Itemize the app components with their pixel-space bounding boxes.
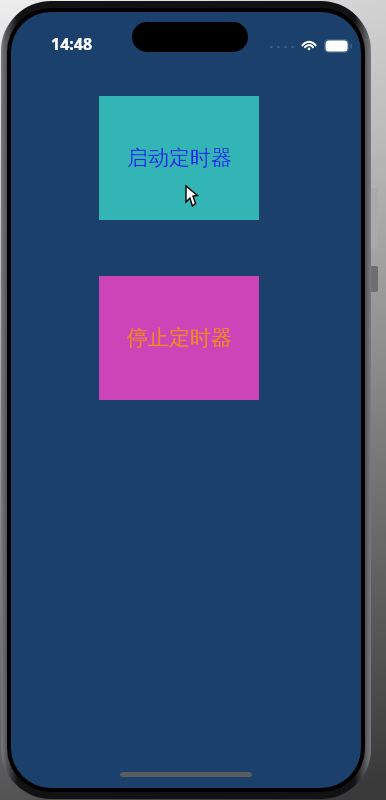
button[interactable]: 停止定时器 (99, 276, 259, 400)
other: Wi-Fi (301, 37, 317, 51)
staticText: 停止定时器 (127, 325, 232, 351)
staticText: 14:48 (51, 33, 93, 55)
other: Cellular signal (270, 43, 294, 51)
other: Battery (324, 39, 352, 53)
staticText: 启动定时器 (127, 145, 232, 171)
button[interactable]: 启动定时器 (99, 96, 259, 220)
